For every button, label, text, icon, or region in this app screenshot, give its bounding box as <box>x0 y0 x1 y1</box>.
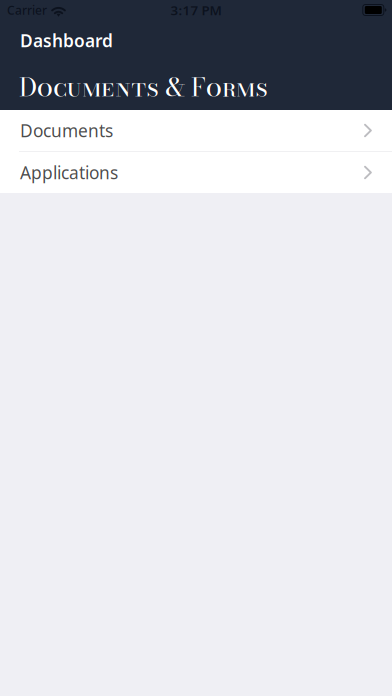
staticText: Documents & Forms <box>19 68 268 106</box>
staticText: Documents <box>20 119 113 142</box>
staticText: Applications <box>20 161 118 184</box>
button[interactable]: Documents <box>0 110 392 151</box>
staticText: Carrier <box>7 2 47 18</box>
staticText: Dashboard <box>20 29 113 52</box>
button[interactable]: Applications <box>0 152 392 193</box>
staticText: 3:17 PM <box>170 1 221 19</box>
